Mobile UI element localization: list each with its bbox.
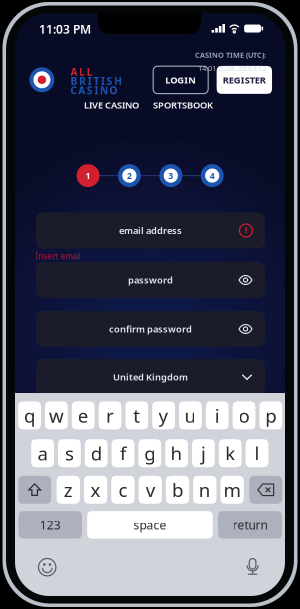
staticText: u [184,403,196,428]
button[interactable]: space [87,511,213,539]
staticText: t [133,403,140,428]
staticText: f [120,440,126,466]
staticText: k [225,440,235,466]
staticText: q [24,403,35,428]
button[interactable]: k [219,439,242,467]
button[interactable]: b [166,476,189,504]
button[interactable]: email address [36,212,265,248]
staticText: 1 [85,170,90,181]
staticText: g [144,440,155,466]
staticText: n [199,477,211,502]
button[interactable]: f [112,439,134,467]
button[interactable]: Delete [249,476,282,504]
staticText: e [78,403,89,428]
staticText: w [49,403,64,428]
staticText: 4 [210,170,215,181]
button[interactable]: e [72,401,95,429]
button[interactable]: s [58,439,81,467]
staticText: s [65,440,74,466]
staticText: LIVE CASINO [84,98,139,111]
staticText: confirm password [109,323,192,335]
staticText: b [172,477,183,502]
button[interactable]: t [125,401,148,429]
button[interactable]: g [138,439,161,467]
button[interactable]: 2 [118,164,141,187]
button[interactable]: Dictation [246,558,259,576]
button[interactable]: LOGIN [153,66,208,94]
button[interactable]: return [218,511,282,539]
button[interactable]: l [246,439,268,467]
button[interactable]: d [85,439,108,467]
button[interactable]: p [259,401,282,429]
button[interactable]: a [31,439,54,467]
button[interactable]: REGISTER [217,66,272,94]
staticText: email address [119,224,182,237]
staticText: d [91,440,102,466]
button[interactable]: i [206,401,229,429]
staticText: BRITISH [71,74,122,88]
staticText: United Kingdom [113,371,188,383]
button[interactable]: j [192,439,215,467]
staticText: ALL [71,65,93,79]
staticText: password [128,274,173,286]
staticText: CASINO TIME (UTC): [195,50,266,60]
button[interactable]: u [179,401,202,429]
button[interactable]: r [99,401,121,429]
staticText: 11:03 PM [39,21,91,37]
button[interactable]: w [45,401,68,429]
button[interactable]: h [165,439,188,467]
button[interactable]: Shift [18,476,51,504]
staticText: x [91,477,101,502]
button[interactable]: United Kingdom [36,359,265,395]
staticText: 14.01.2026. 22:03:12 [198,63,266,73]
staticText: SPORTSBOOK [153,98,213,111]
staticText: v [146,477,155,502]
staticText: h [171,440,183,466]
staticText: r [106,403,114,428]
staticText: m [224,477,241,502]
button[interactable]: q [18,401,41,429]
staticText: return [232,517,267,533]
staticText: ! [245,224,247,236]
staticText: y [159,403,169,428]
staticText: j [201,440,206,466]
staticText: l [254,440,259,466]
staticText: o [238,403,249,428]
button[interactable]: n [193,476,216,504]
button[interactable]: x [84,476,107,504]
staticText: space [133,517,166,533]
staticText: z [64,477,73,502]
button[interactable]: o [233,401,255,429]
button[interactable]: 3 [159,164,182,187]
button[interactable]: password [36,262,265,298]
staticText: 2 [127,170,132,181]
button[interactable]: confirm password [36,311,265,347]
button[interactable]: m [220,476,244,504]
staticText: i [215,403,220,428]
button[interactable]: 1 [76,164,99,187]
button[interactable]: SPORTSBOOK [153,98,213,111]
button[interactable]: Emoji keyboard [38,558,57,577]
staticText: 123 [40,517,61,533]
button[interactable]: v [139,476,162,504]
staticText: Insert email [35,251,80,262]
button[interactable]: y [152,401,175,429]
staticText: REGISTER [223,73,266,86]
staticText: a [38,440,48,466]
button[interactable]: z [57,476,80,504]
button[interactable]: 123 [18,511,82,539]
staticText: CASINO [71,83,118,97]
staticText: LOGIN [165,73,196,86]
staticText: p [265,403,276,428]
button[interactable]: c [111,476,134,504]
staticText: 3 [168,170,173,181]
staticText: c [118,477,127,502]
button[interactable]: 4 [201,164,224,187]
button[interactable]: LIVE CASINO [84,98,139,111]
